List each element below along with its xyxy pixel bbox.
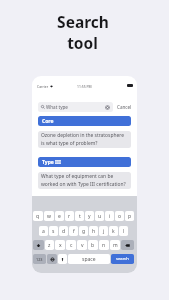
button[interactable]: Core xyxy=(38,116,131,126)
button[interactable]: e xyxy=(55,211,64,221)
staticText: o xyxy=(118,213,122,220)
staticText: q xyxy=(36,213,40,220)
button[interactable]: Backspace xyxy=(121,240,134,250)
staticText: p xyxy=(128,213,132,220)
button[interactable]: u xyxy=(95,211,104,221)
staticText: a xyxy=(42,228,45,235)
button[interactable]: s xyxy=(49,226,58,236)
button[interactable]: What type xyxy=(38,102,113,112)
staticText: v xyxy=(81,242,84,249)
other: Clear text xyxy=(105,105,110,110)
button[interactable]: Cancel xyxy=(115,102,134,112)
staticText: Carrier xyxy=(37,84,49,89)
staticText: e xyxy=(58,213,61,220)
staticText: j xyxy=(103,228,105,235)
button[interactable]: x xyxy=(55,240,65,250)
button[interactable]: d xyxy=(59,226,68,236)
button[interactable]: Dictation xyxy=(58,254,67,264)
staticText: n xyxy=(102,242,106,249)
button[interactable]: n xyxy=(99,240,109,250)
button[interactable]: t xyxy=(75,211,84,221)
button[interactable]: h xyxy=(89,226,98,236)
button[interactable]: z xyxy=(45,240,54,250)
button[interactable]: f xyxy=(69,226,78,236)
button[interactable]: Shift xyxy=(33,240,44,250)
button[interactable]: Type III xyxy=(38,157,131,167)
button[interactable]: q xyxy=(33,211,43,221)
staticText: What type of equipment can be worked on … xyxy=(41,173,126,187)
button[interactable]: Ozone depletion in the stratosphere is w… xyxy=(38,131,131,148)
staticText: space xyxy=(82,256,96,263)
staticText: z xyxy=(48,242,51,249)
staticText: Search xyxy=(57,11,109,32)
staticText: tool xyxy=(67,32,98,53)
staticText: h xyxy=(92,228,96,235)
button[interactable]: m xyxy=(110,240,120,250)
button[interactable]: p xyxy=(125,211,134,221)
staticText: f xyxy=(73,228,75,235)
button[interactable]: j xyxy=(99,226,108,236)
button[interactable]: a xyxy=(39,226,48,236)
button[interactable]: y xyxy=(85,211,94,221)
staticText: d xyxy=(62,228,66,235)
staticText: g xyxy=(82,228,86,235)
button[interactable]: k xyxy=(109,226,118,236)
staticText: Core xyxy=(42,118,54,125)
button[interactable]: b xyxy=(88,240,98,250)
staticText: l xyxy=(123,228,125,235)
staticText: u xyxy=(98,213,102,220)
button[interactable]: What type of equipment can be worked on … xyxy=(38,172,131,189)
staticText: k xyxy=(112,228,115,235)
staticText: y xyxy=(88,213,91,220)
staticText: Ozone depletion in the stratosphere is w… xyxy=(41,132,124,146)
button[interactable]: r xyxy=(65,211,74,221)
button[interactable]: space xyxy=(68,254,110,264)
staticText: 11:55 PM xyxy=(77,84,92,89)
button[interactable]: o xyxy=(115,211,124,221)
staticText: c xyxy=(70,242,73,249)
button[interactable]: w xyxy=(44,211,54,221)
button[interactable]: Emoji xyxy=(47,254,57,264)
staticText: Type III xyxy=(42,159,61,166)
staticText: What type xyxy=(46,104,68,110)
staticText: i xyxy=(109,213,111,220)
staticText: b xyxy=(91,242,95,249)
button[interactable]: g xyxy=(79,226,88,236)
staticText: s xyxy=(52,228,55,235)
staticText: w xyxy=(47,213,51,220)
staticText: Cancel xyxy=(117,104,132,110)
button[interactable]: l xyxy=(119,226,128,236)
staticText: x xyxy=(59,242,62,249)
staticText: t xyxy=(79,213,81,220)
button[interactable]: i xyxy=(105,211,114,221)
staticText: r xyxy=(68,213,71,220)
staticText: 123 xyxy=(36,257,43,262)
button[interactable]: search xyxy=(111,254,134,264)
button[interactable]: c xyxy=(66,240,76,250)
staticText: m xyxy=(113,242,118,249)
staticText: search xyxy=(116,256,129,262)
button[interactable]: Numbers xyxy=(33,254,46,264)
button[interactable]: v xyxy=(77,240,87,250)
